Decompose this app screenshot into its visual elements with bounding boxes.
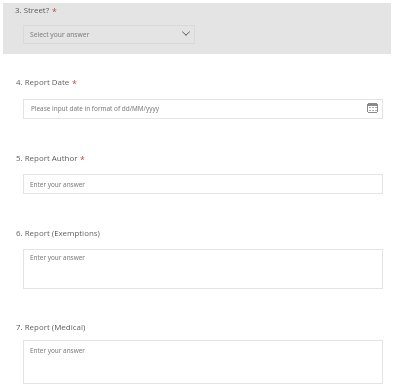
staticText: * <box>80 154 85 166</box>
staticText: Enter your answer <box>30 253 85 262</box>
staticText: 6. Report (Exemptions) <box>16 228 100 239</box>
button[interactable]: Please input date in format of dd/MM/yyy… <box>23 99 383 119</box>
staticText: Enter your answer <box>30 346 85 355</box>
staticText: 5. Report Author <box>16 153 78 164</box>
staticText: 7. Report (Medical) <box>16 322 86 333</box>
staticText: Please input date in format of dd/MM/yyy… <box>31 104 160 113</box>
staticText: Enter your answer <box>30 180 85 189</box>
button[interactable]: Enter your answer <box>23 340 383 384</box>
staticText: * <box>52 6 57 18</box>
button[interactable]: Enter your answer <box>23 174 383 194</box>
button[interactable]: Pick a date <box>367 103 378 113</box>
button[interactable]: Select your answer <box>23 25 195 44</box>
staticText: Select your answer <box>30 30 90 39</box>
button[interactable]: Enter your answer <box>23 249 383 289</box>
staticText: * <box>72 78 77 90</box>
staticText: 4. Report Date <box>16 77 70 88</box>
staticText: 3. Street? <box>15 5 50 16</box>
